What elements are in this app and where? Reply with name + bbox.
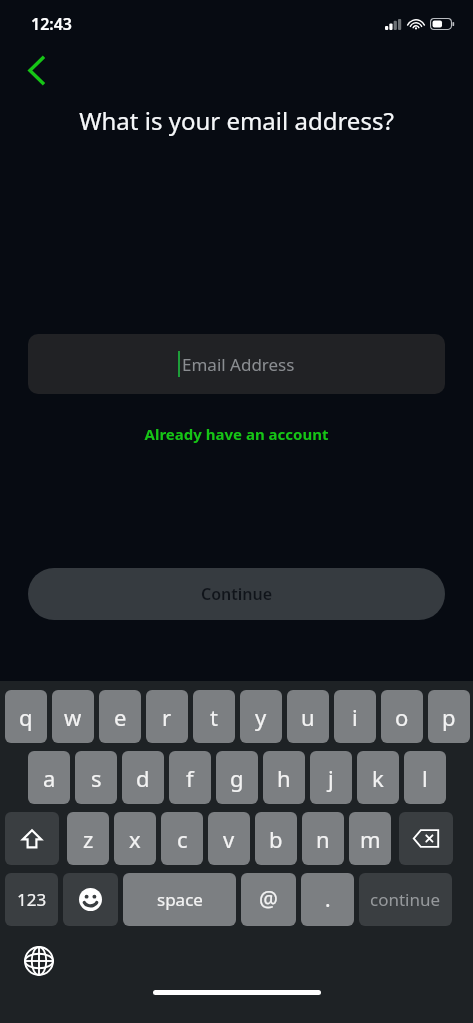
staticText: y xyxy=(255,702,267,732)
staticText: k xyxy=(372,763,384,793)
staticText: j xyxy=(328,763,334,793)
button[interactable]: Already have an account xyxy=(0,420,473,448)
staticText: Continue xyxy=(201,583,273,605)
button[interactable]: Change keyboard language xyxy=(22,944,56,978)
staticText: 12:43 xyxy=(31,13,73,35)
button[interactable]: k xyxy=(357,751,399,804)
staticText: u xyxy=(301,702,315,732)
button[interactable]: p xyxy=(428,690,470,743)
staticText: r xyxy=(162,702,172,732)
button[interactable]: @ xyxy=(241,873,296,926)
button[interactable]: w xyxy=(52,690,94,743)
button[interactable]: 123 xyxy=(5,873,58,926)
staticText: a xyxy=(43,763,56,793)
button[interactable]: i xyxy=(334,690,376,743)
button[interactable]: d xyxy=(122,751,164,804)
staticText: What is your email address? xyxy=(0,104,473,137)
button[interactable]: b xyxy=(255,812,297,865)
button[interactable]: Backspace xyxy=(399,812,453,865)
button[interactable]: s xyxy=(75,751,117,804)
staticText: z xyxy=(83,824,94,854)
staticText: x xyxy=(129,824,141,854)
button[interactable]: space xyxy=(123,873,236,926)
staticText: d xyxy=(136,763,150,793)
button[interactable]: Email Address xyxy=(28,334,445,394)
button[interactable]: e xyxy=(99,690,141,743)
staticText: m xyxy=(360,824,381,854)
staticText: space xyxy=(157,888,203,911)
staticText: o xyxy=(395,702,409,732)
button[interactable]: Emoji xyxy=(63,873,118,926)
button[interactable]: r xyxy=(146,690,188,743)
button[interactable]: . xyxy=(301,873,354,926)
staticText: @ xyxy=(259,885,278,914)
button[interactable]: continue xyxy=(359,873,452,926)
button[interactable]: z xyxy=(67,812,109,865)
button[interactable]: g xyxy=(216,751,258,804)
button[interactable]: a xyxy=(28,751,70,804)
button[interactable]: q xyxy=(5,690,47,743)
staticText: h xyxy=(277,763,291,793)
staticText: s xyxy=(91,763,102,793)
button[interactable]: n xyxy=(302,812,344,865)
button[interactable]: o xyxy=(381,690,423,743)
staticText: 123 xyxy=(17,888,47,911)
button[interactable]: h xyxy=(263,751,305,804)
button[interactable]: f xyxy=(169,751,211,804)
staticText: b xyxy=(269,824,283,854)
staticText: p xyxy=(442,702,456,732)
button[interactable]: Continue xyxy=(28,568,445,620)
button[interactable]: Back xyxy=(14,48,58,92)
button[interactable]: u xyxy=(287,690,329,743)
button[interactable]: v xyxy=(208,812,250,865)
button[interactable]: m xyxy=(349,812,391,865)
staticText: continue xyxy=(370,888,441,911)
button[interactable]: Shift xyxy=(5,812,59,865)
staticText: w xyxy=(64,702,82,732)
staticText: e xyxy=(114,702,127,732)
button[interactable]: c xyxy=(161,812,203,865)
staticText: v xyxy=(223,824,235,854)
staticText: l xyxy=(422,763,428,793)
staticText: g xyxy=(230,763,244,793)
staticText: c xyxy=(177,824,188,854)
staticText: Email Address xyxy=(182,353,295,376)
staticText: q xyxy=(19,702,33,732)
button[interactable]: t xyxy=(193,690,235,743)
button[interactable]: l xyxy=(404,751,446,804)
staticText: n xyxy=(316,824,330,854)
staticText: f xyxy=(186,763,194,793)
button[interactable]: y xyxy=(240,690,282,743)
button[interactable]: j xyxy=(310,751,352,804)
staticText: i xyxy=(352,702,358,732)
staticText: t xyxy=(210,702,218,732)
button[interactable]: x xyxy=(114,812,156,865)
staticText: . xyxy=(325,885,331,914)
